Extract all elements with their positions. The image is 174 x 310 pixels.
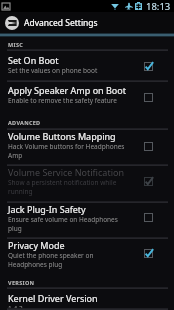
staticText: ADVANCED	[8, 119, 41, 126]
staticText: MISC	[8, 41, 24, 48]
other: Enabled	[141, 246, 155, 260]
button[interactable]: Kernel Driver Version	[0, 289, 174, 310]
staticText: running	[8, 187, 33, 196]
staticText: Privacy Mode	[8, 239, 65, 251]
staticText: Hack Volume buttons for Headphones	[8, 142, 125, 151]
staticText: Enable to remove the safety feature	[8, 96, 117, 105]
staticText: Set On Boot	[8, 54, 59, 66]
staticText: Headphones plug	[8, 260, 63, 269]
staticText: Jack Plug-In Safety	[8, 203, 86, 215]
button[interactable]: Apply Speaker Amp on Boot	[0, 82, 174, 114]
staticText: VERSION	[8, 279, 35, 286]
staticText: Amp	[8, 151, 23, 160]
staticText: 18:13	[146, 0, 171, 12]
staticText: Set the values on phone boot	[8, 66, 98, 75]
staticText: Apply Speaker Amp on Boot	[8, 84, 126, 96]
staticText: 1.4.3	[8, 304, 23, 310]
staticText: Volume Service Notification	[8, 166, 124, 178]
button[interactable]: Volume Buttons Mapping	[0, 130, 174, 166]
staticText: plug	[8, 224, 22, 233]
other: Disabled	[141, 139, 155, 153]
staticText: Quiet the phone speaker on	[8, 251, 94, 260]
staticText: Volume Buttons Mapping	[8, 130, 116, 142]
other: Enabled	[141, 174, 155, 188]
button[interactable]: Volume Service Notification	[0, 166, 174, 203]
button[interactable]: Set On Boot	[0, 51, 174, 82]
other: Disabled	[141, 90, 155, 104]
staticText: Kernel Driver Version	[8, 292, 98, 304]
staticText: Show a persistent notification while	[8, 178, 117, 187]
staticText: Ensure safe volume on Headphones	[8, 215, 118, 224]
staticText: Advanced Settings	[24, 17, 98, 29]
button[interactable]: Jack Plug-In Safety	[0, 203, 174, 239]
button[interactable]: Privacy Mode	[0, 239, 174, 275]
button[interactable]: Advanced Settings	[0, 12, 174, 33]
other: Disabled	[141, 210, 155, 224]
other: Enabled	[141, 59, 155, 73]
